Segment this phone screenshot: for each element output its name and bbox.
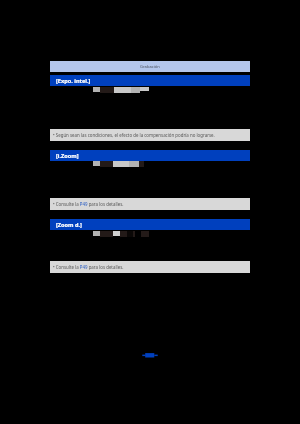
staticText: • Consulte la P49 para los detalles. — [53, 264, 124, 270]
button[interactable]: Page 101 — [141, 351, 159, 360]
button[interactable]: Intelligent exposure example images — [93, 87, 149, 94]
button[interactable]: [Zoom d.] — [50, 219, 250, 230]
button[interactable]: [i.Zoom] — [50, 150, 250, 161]
button[interactable]: [Expo. intel.] — [50, 75, 250, 86]
button[interactable]: • Consulte la P49 para los detalles. — [50, 198, 250, 210]
button[interactable]: Grabación — [50, 61, 250, 72]
button[interactable]: • Consulte la P49 para los detalles. — [50, 261, 250, 273]
staticText: [Zoom d.] — [56, 221, 82, 229]
button[interactable]: • Según sean las condiciones, el efecto … — [50, 129, 250, 141]
staticText: [Expo. intel.] — [56, 77, 91, 85]
staticText: • Consulte la P49 para los detalles. — [53, 201, 124, 207]
staticText: [i.Zoom] — [56, 152, 79, 160]
staticText: • Según sean las condiciones, el efecto … — [53, 132, 215, 138]
button[interactable]: i.Zoom example images — [93, 161, 144, 168]
button[interactable]: Digital zoom example images — [93, 231, 149, 238]
staticText: Grabación — [140, 64, 160, 70]
